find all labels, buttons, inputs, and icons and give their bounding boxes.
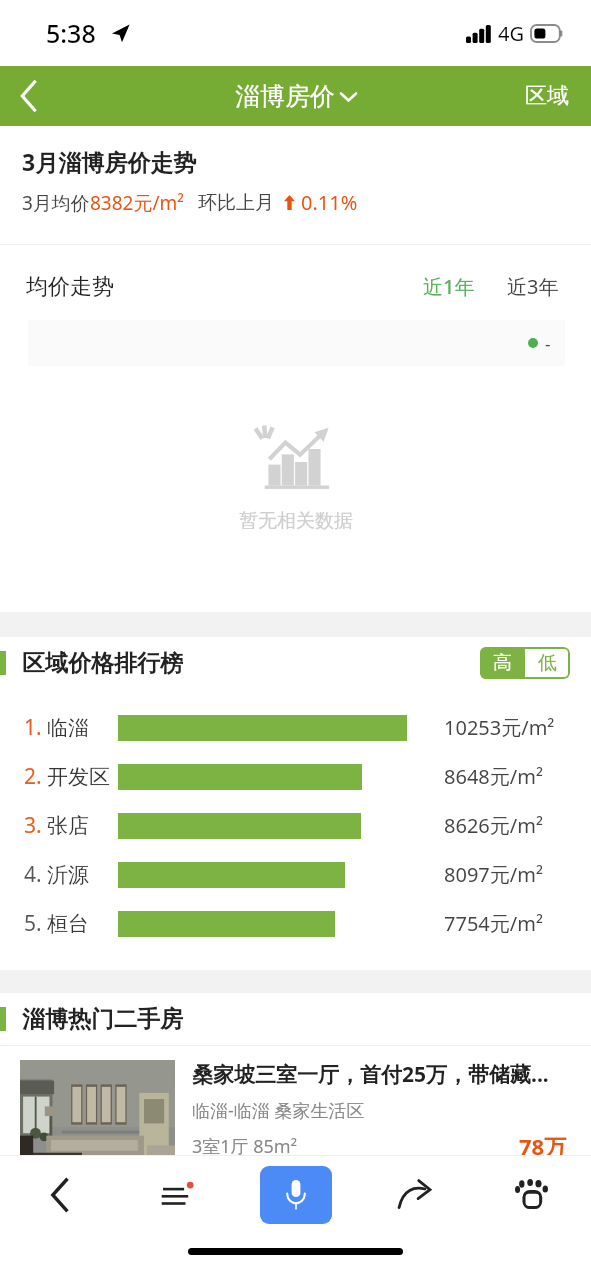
staticText: 5:38 [46,16,96,50]
staticText: 沂源 [47,862,89,888]
button[interactable]: 近1年 [417,269,481,304]
button[interactable]: 桑家坡三室一厅，首付25万，带储藏... [0,1046,591,1155]
staticText: 高 [493,651,512,675]
staticText: 0.11% [301,189,358,216]
staticText: 临淄 [47,715,89,741]
staticText: 78万 [519,1131,567,1155]
button[interactable]: 3. [0,801,591,850]
staticText: 1. [24,713,42,742]
staticText: 8648元/m² [444,763,543,790]
staticText: 淄博房价 [235,81,335,112]
button[interactable]: 近3年 [501,269,565,304]
staticText: 8097元/m² [444,861,543,888]
staticText: 8382元/m² [90,190,184,216]
button[interactable]: Baidu home [473,1156,591,1234]
button[interactable]: 淄博房价 [235,81,356,112]
staticText: 7754元/m² [444,910,543,937]
staticText: 3室1厅 85m² [192,1134,297,1155]
button[interactable]: Menu [119,1156,237,1234]
staticText: 4G [498,20,524,47]
staticText: 低 [538,651,557,675]
button[interactable]: Voice search [260,1166,332,1224]
button[interactable]: Back [0,1156,119,1234]
staticText: 临淄-临淄 桑家生活区 [192,1098,365,1123]
button[interactable]: 5. [0,899,591,948]
staticText: 10253元/m² [444,714,555,741]
staticText: 4. [24,860,42,889]
button[interactable]: 低 [525,647,570,679]
staticText: - [545,332,551,355]
staticText: 近1年 [423,273,475,300]
staticText: 近3年 [507,273,559,300]
staticText: 8626元/m² [444,812,543,839]
button[interactable]: 高 [480,647,525,679]
staticText: 区域 [525,82,569,110]
staticText: 3月均价 [22,190,90,216]
staticText: 暂无相关数据 [239,509,353,533]
staticText: 桓台 [47,911,89,937]
button[interactable]: 2. [0,752,591,801]
staticText: 区域价格排行榜 [22,649,183,678]
button[interactable]: Share [355,1156,473,1234]
staticText: 3. [24,811,42,840]
button[interactable]: 4. [0,850,591,899]
button[interactable]: Back [0,66,58,126]
button[interactable]: 区域 [503,66,591,126]
staticText: 桑家坡三室一厅，首付25万，带储藏... [192,1060,549,1089]
staticText: 2. [24,762,42,791]
staticText: 开发区 [47,764,110,790]
staticText: 淄博热门二手房 [22,1005,183,1034]
staticText: 5. [24,909,42,938]
staticText: 环比上月 [198,191,274,215]
button[interactable]: 1. [0,703,591,752]
staticText: 张店 [47,813,89,839]
staticText: 3月淄博房价走势 [22,146,197,177]
staticText: 均价走势 [26,273,114,301]
